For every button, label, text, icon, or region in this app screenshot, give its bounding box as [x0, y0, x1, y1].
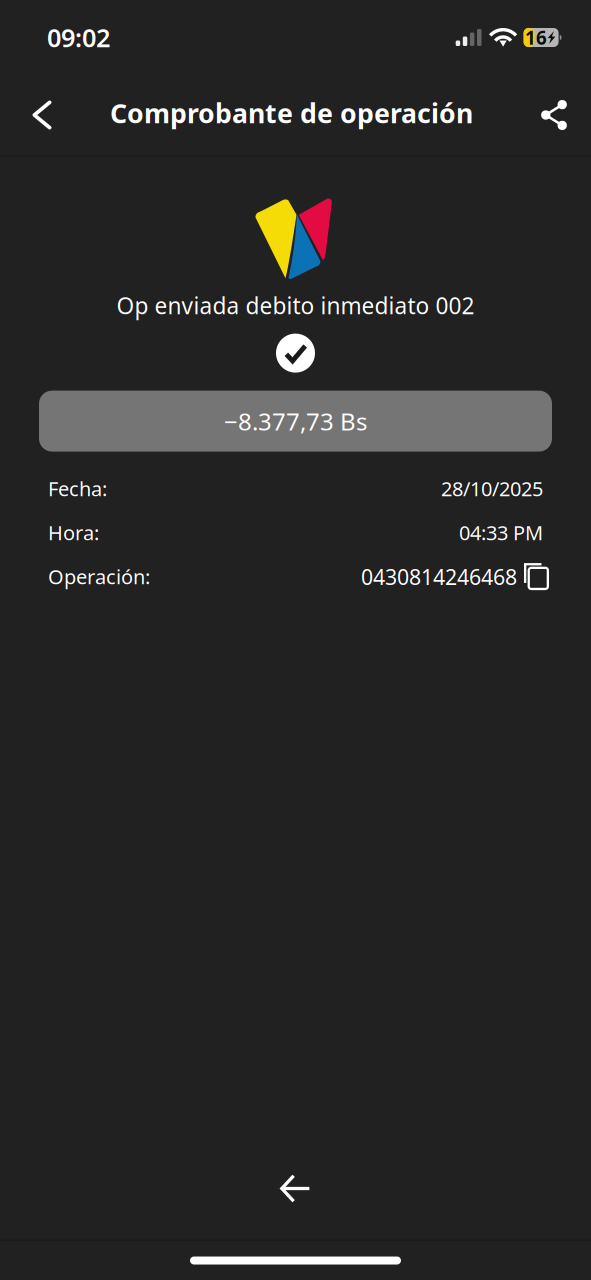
staticText: −8.377,73 Bs	[224, 405, 367, 437]
staticText: Op enviada debito inmediato 002	[116, 290, 474, 321]
button[interactable]: Atrás	[11, 79, 73, 151]
staticText: 0430814246468	[361, 562, 517, 591]
staticText: Operación:	[48, 563, 150, 590]
button[interactable]: Compartir	[523, 79, 585, 151]
staticText: Hora:	[48, 519, 99, 546]
button[interactable]: Copiar número de operación	[517, 555, 549, 599]
staticText: 09:02	[47, 21, 110, 54]
staticText: 04:33 PM	[459, 519, 543, 546]
staticText: Fecha:	[48, 475, 107, 502]
staticText: 28/10/2025	[441, 475, 543, 502]
staticText: Comprobante de operación	[110, 95, 473, 131]
button[interactable]: Volver	[250, 1158, 340, 1218]
staticText: 16	[525, 25, 547, 50]
